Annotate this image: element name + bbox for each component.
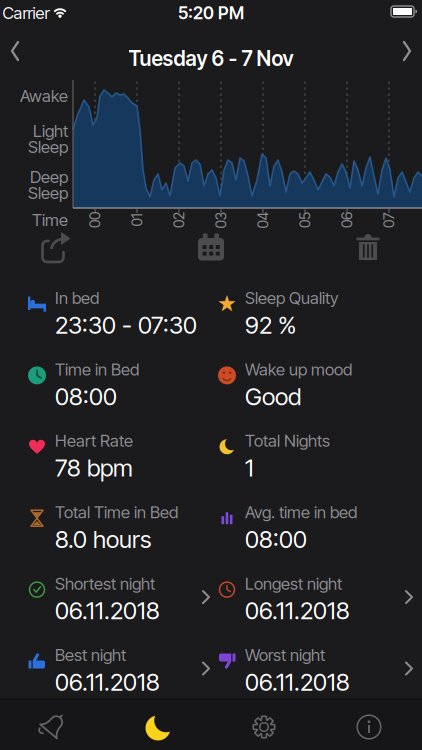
staticText: 92 % — [245, 310, 296, 339]
staticText: Best night — [55, 645, 126, 665]
staticText: Sleep — [28, 183, 68, 203]
button[interactable]: Calendar — [198, 233, 224, 260]
staticText: Wake up mood — [245, 359, 352, 379]
button[interactable]: Longest night — [213, 570, 417, 626]
staticText: Longest night — [245, 573, 342, 594]
staticText: Total Nights — [245, 431, 330, 451]
staticText: Good — [245, 382, 301, 411]
button[interactable]: Previous day — [11, 41, 41, 75]
staticText: 06.11.2018 — [55, 667, 160, 696]
staticText: 06 — [339, 211, 355, 229]
button[interactable]: Settings — [251, 714, 277, 740]
staticText: Time in Bed — [55, 359, 139, 379]
button[interactable]: Delete — [356, 233, 379, 260]
staticText: Sleep Quality — [245, 288, 338, 308]
button[interactable]: Next day — [381, 41, 411, 75]
button[interactable]: Share — [37, 232, 70, 262]
button[interactable]: Sleep — [145, 714, 171, 740]
staticText: 1 — [245, 453, 254, 482]
staticText: 06.11.2018 — [245, 596, 350, 625]
staticText: Awake — [20, 86, 68, 106]
staticText: Light — [33, 121, 68, 141]
staticText: 08:00 — [245, 525, 307, 554]
button[interactable]: Alarms — [38, 711, 68, 741]
staticText: 06.11.2018 — [55, 596, 160, 625]
staticText: 06.11.2018 — [245, 667, 350, 696]
staticText: Time — [32, 210, 68, 230]
staticText: 5:20 PM — [178, 2, 244, 23]
button[interactable]: Worst night — [213, 641, 417, 697]
staticText: 05 — [297, 211, 313, 229]
staticText: Total Time in Bed — [55, 502, 178, 522]
button[interactable]: Best night — [23, 641, 214, 697]
staticText: In bed — [55, 288, 99, 308]
button[interactable]: Info — [356, 714, 382, 740]
staticText: 01 — [130, 211, 143, 229]
staticText: 00 — [87, 211, 103, 229]
staticText: 07 — [381, 211, 397, 229]
staticText: Sleep — [28, 137, 68, 157]
button[interactable]: Shortest night — [23, 570, 214, 626]
staticText: 04 — [254, 211, 271, 229]
staticText: Carrier — [2, 3, 49, 23]
staticText: 23:30 - 07:30 — [55, 310, 197, 339]
staticText: 8.0 hours — [55, 525, 151, 554]
staticText: Heart Rate — [55, 431, 133, 451]
staticText: Tuesday 6 - 7 Nov — [128, 46, 293, 71]
staticText: Shortest night — [55, 573, 155, 594]
staticText: 03 — [212, 211, 229, 229]
staticText: 78 bpm — [55, 453, 133, 482]
staticText: Avg. time in bed — [245, 502, 357, 522]
staticText: Worst night — [245, 645, 325, 665]
staticText: 08:00 — [55, 382, 117, 411]
staticText: Deep — [30, 167, 68, 187]
staticText: 02 — [171, 211, 187, 229]
